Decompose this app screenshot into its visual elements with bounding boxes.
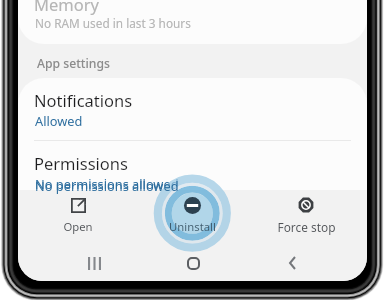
staticText: Permissions xyxy=(34,152,128,174)
staticText: No permissions allowed xyxy=(35,177,179,194)
staticText: Open xyxy=(63,219,93,234)
button[interactable]: Back xyxy=(259,247,325,279)
button[interactable]: Permissions xyxy=(18,141,367,203)
button[interactable]: Home xyxy=(160,247,226,279)
staticText: No permissions allowed xyxy=(35,175,179,192)
button[interactable]: Open xyxy=(33,193,123,237)
staticText: Uninstall xyxy=(169,219,216,234)
staticText: Allowed xyxy=(35,112,83,129)
staticText: Force stop xyxy=(277,219,336,235)
button[interactable]: Uninstall xyxy=(147,193,237,237)
button[interactable]: Notifications xyxy=(18,78,367,140)
staticText: Notifications xyxy=(34,89,133,111)
button[interactable]: Recents xyxy=(61,247,127,279)
button[interactable]: Memory xyxy=(18,0,367,44)
staticText: Memory xyxy=(34,0,99,15)
staticText: No RAM used in last 3 hours xyxy=(35,15,191,31)
button[interactable]: Force stop xyxy=(261,193,351,237)
staticText: App settings xyxy=(37,55,110,72)
